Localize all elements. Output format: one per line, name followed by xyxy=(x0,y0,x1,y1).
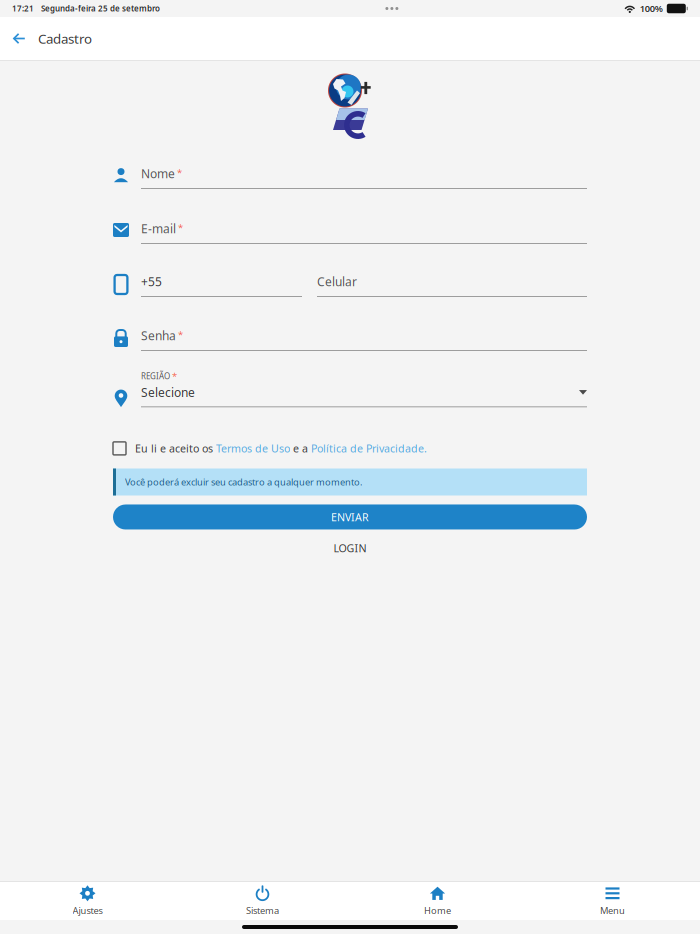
staticText: Ajustes xyxy=(72,904,102,917)
staticText: ENVIAR xyxy=(331,510,369,524)
button[interactable]: LOGIN xyxy=(113,538,587,557)
button[interactable]: Aceitar os termos xyxy=(113,442,126,455)
staticText: Senha xyxy=(141,327,176,343)
button[interactable]: Política de Privacidade. xyxy=(311,441,427,455)
button[interactable]: Home xyxy=(350,882,525,920)
staticText: +55 xyxy=(141,273,162,289)
staticText: e a xyxy=(290,441,311,455)
button[interactable]: Voltar xyxy=(6,23,32,53)
staticText: Home xyxy=(424,904,451,917)
staticText: Política de Privacidade. xyxy=(311,441,427,455)
staticText: Cadastro xyxy=(38,30,92,47)
staticText: REGIÃO xyxy=(141,371,170,381)
button[interactable]: ENVIAR xyxy=(113,504,587,529)
button[interactable]: Menu xyxy=(525,882,700,920)
button[interactable]: Sistema xyxy=(175,882,350,920)
staticText: Menu xyxy=(600,904,625,917)
button[interactable]: Termos de Uso xyxy=(216,441,290,455)
staticText: Eu li e aceito os xyxy=(135,441,216,455)
staticText: LOGIN xyxy=(333,541,366,555)
staticText: * xyxy=(178,221,183,234)
staticText: * xyxy=(178,328,183,341)
staticText: Termos de Uso xyxy=(216,441,290,455)
staticText: Celular xyxy=(317,273,357,289)
staticText: * xyxy=(172,370,177,382)
button[interactable]: Ajustes xyxy=(0,882,175,920)
staticText: E-mail xyxy=(141,220,176,236)
staticText: Segunda-feira 25 de setembro xyxy=(41,3,160,14)
staticText: Você poderá excluir seu cadastro a qualq… xyxy=(125,476,363,488)
staticText: * xyxy=(177,166,182,179)
staticText: Nome xyxy=(141,165,175,181)
staticText: Sistema xyxy=(246,904,279,917)
staticText: 100% xyxy=(640,2,663,15)
staticText: 17:21 xyxy=(12,3,34,14)
staticText: Selecione xyxy=(141,384,195,400)
